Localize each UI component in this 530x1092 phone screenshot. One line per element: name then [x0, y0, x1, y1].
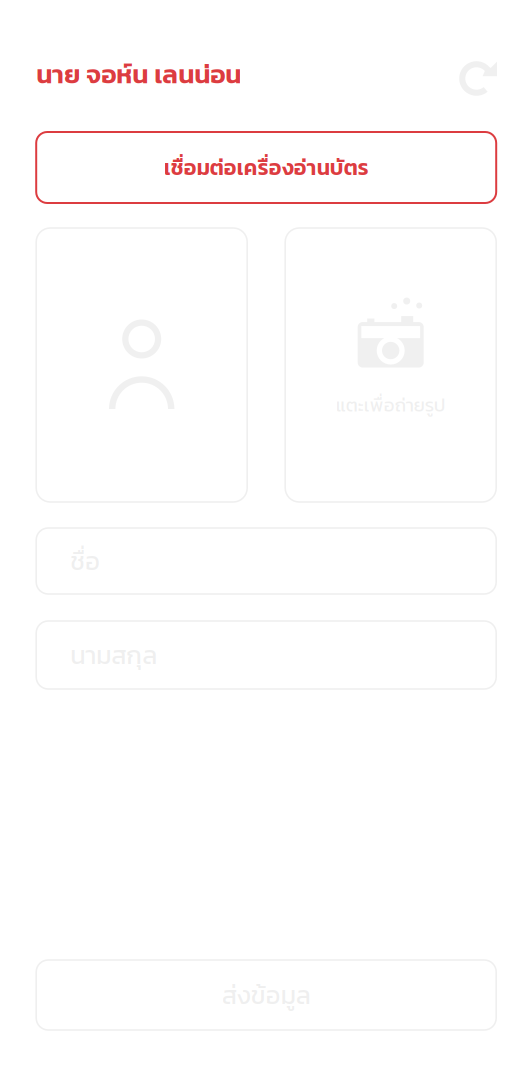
- button[interactable]: เชื่อมต่อเครื่องอ่านบัตร: [36, 132, 496, 203]
- staticText: นามสกุล: [70, 636, 157, 674]
- button[interactable]: Take photo: [285, 228, 496, 502]
- staticText: นาย จอห์น เลนน่อน: [36, 55, 241, 93]
- button[interactable]: Refresh: [452, 52, 496, 96]
- button[interactable]: ส่งข้อมูล: [36, 960, 496, 1030]
- staticText: แตะเพื่อถ่ายรูป: [336, 391, 446, 419]
- staticText: เชื่อมต่อเครื่องอ่านบัตร: [164, 152, 369, 183]
- staticText: ชื่อ: [70, 542, 100, 580]
- staticText: ส่งข้อมูล: [222, 976, 311, 1014]
- button[interactable]: นามสกุล: [36, 621, 496, 689]
